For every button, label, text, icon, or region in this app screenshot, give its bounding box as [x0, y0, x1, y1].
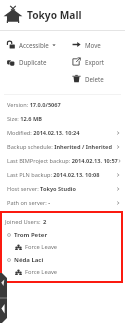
staticText: Néda Laci — [14, 256, 44, 264]
button[interactable]: Path on server: - — [7, 196, 121, 210]
staticText: Delete — [85, 75, 104, 83]
button[interactable]: Last BIMProject backup: 2014.02.13. 10:5… — [7, 154, 121, 168]
staticText: Host server: Tokyo Studio — [7, 185, 76, 193]
staticText: Modified: 2014.02.13. 10:24 — [7, 129, 80, 137]
staticText: Trom Peter — [14, 231, 48, 239]
button[interactable]: Modified: 2014.02.13. 10:24 — [7, 126, 121, 140]
button[interactable]: Version: 17.0.0/5067 — [7, 98, 121, 112]
button[interactable]: Accessible — [6, 36, 70, 53]
staticText: Duplicate — [19, 58, 47, 66]
button[interactable]: Delete — [72, 70, 125, 87]
button[interactable]: Tokyo Mall — [0, 0, 125, 30]
staticText: 2 — [43, 218, 47, 226]
button[interactable]: Force Leave — [15, 241, 123, 253]
button[interactable]: Collapse side panel — [0, 273, 7, 323]
button[interactable]: Backup schedule: Inherited / Inherited — [7, 140, 121, 154]
staticText: Version: 17.0.0/5067 — [7, 101, 61, 109]
staticText: Joined Users: — [5, 218, 43, 226]
button[interactable]: Move — [72, 36, 125, 53]
button[interactable]: Collapse side panel — [0, 273, 7, 323]
button[interactable]: Néda Laci — [7, 253, 123, 266]
staticText: Path on server: - — [7, 199, 50, 207]
button[interactable]: Host server: Tokyo Studio — [7, 182, 121, 196]
staticText: Last PLN backup: 2014.02.13. 10:08 — [7, 171, 100, 179]
button[interactable]: Force Leave — [15, 266, 123, 278]
button[interactable]: Size: 12.6 MB — [7, 112, 121, 126]
button[interactable]: Duplicate — [6, 53, 70, 70]
staticText: Last BIMProject backup: 2014.02.13. 10:5… — [7, 157, 118, 165]
staticText: Move — [85, 41, 101, 49]
staticText: Size: 12.6 MB — [7, 115, 42, 123]
staticText: Export — [85, 58, 105, 66]
button[interactable]: Export — [72, 53, 125, 70]
button[interactable]: Last PLN backup: 2014.02.13. 10:08 — [7, 168, 121, 182]
staticText: Force Leave — [25, 243, 58, 251]
button[interactable]: Trom Peter — [7, 228, 123, 241]
staticText: Accessible — [19, 41, 49, 49]
button[interactable]: Joined Users: — [5, 215, 118, 228]
staticText: Tokyo Mall — [27, 8, 82, 22]
staticText: Force Leave — [25, 268, 58, 276]
staticText: Backup schedule: Inherited / Inherited — [7, 143, 112, 151]
